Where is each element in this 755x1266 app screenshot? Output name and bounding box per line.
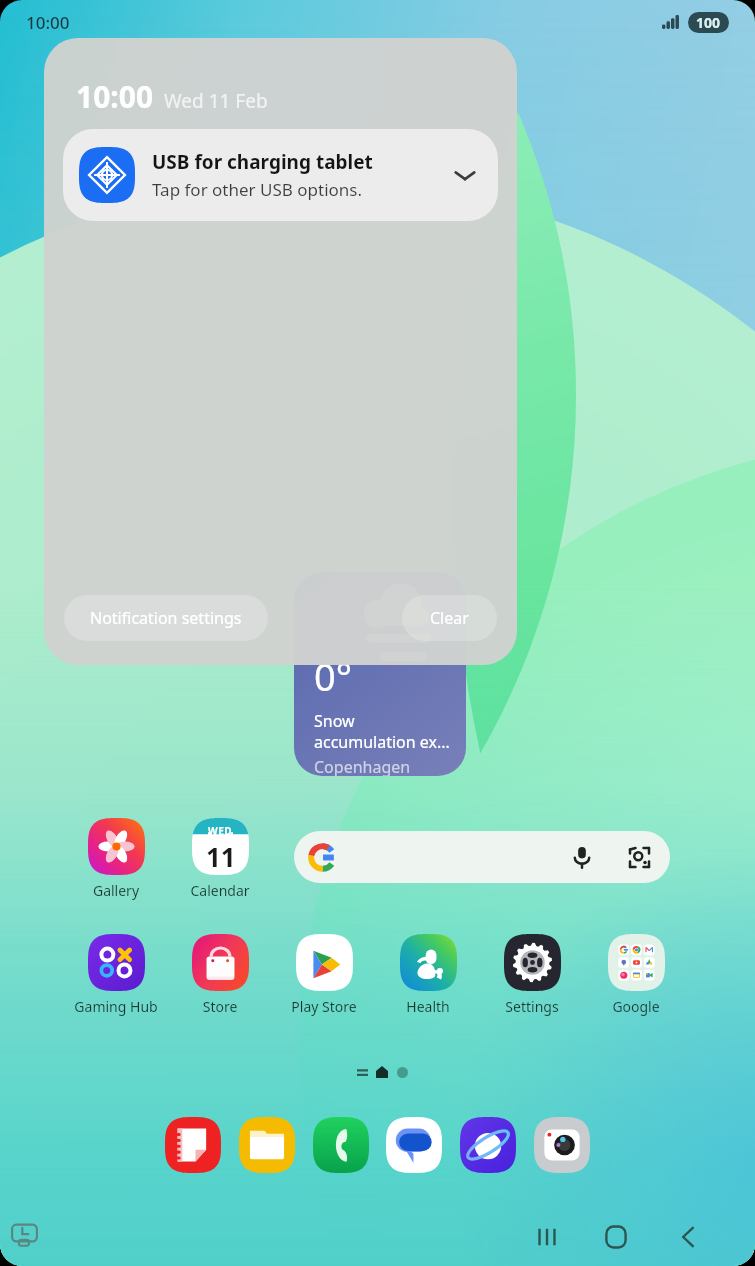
staticText: Calendar	[171, 881, 269, 900]
staticText: Settings	[483, 997, 581, 1016]
button[interactable]: Home page	[372, 1062, 392, 1082]
staticText: 10:00	[76, 76, 154, 117]
button[interactable]	[534, 1117, 590, 1173]
button[interactable]: Store	[171, 934, 269, 1016]
staticText: Snow accumulation ex...	[314, 710, 450, 753]
button[interactable]	[239, 1117, 295, 1173]
staticText: Gaming Hub	[67, 997, 165, 1016]
button[interactable]: Gallery	[67, 818, 165, 900]
staticText: 10:00	[26, 11, 70, 34]
button[interactable]: Gaming Hub	[67, 934, 165, 1016]
staticText: 0°	[314, 650, 353, 702]
staticText: 100	[696, 13, 721, 32]
button[interactable]: Notification settings	[64, 595, 268, 641]
button[interactable]: Widgets page	[352, 1062, 372, 1082]
other: Voice search	[570, 845, 594, 869]
staticText: Wed 11 Feb	[164, 88, 268, 114]
staticText: Gallery	[67, 881, 165, 900]
staticText: Store	[171, 997, 269, 1016]
button[interactable]: Settings	[483, 934, 581, 1016]
staticText: Copenhagen	[314, 756, 411, 776]
staticText: Clear	[430, 607, 469, 629]
button[interactable]: Google	[587, 934, 685, 1016]
button[interactable]: Home	[590, 1211, 642, 1263]
other: Expand	[452, 162, 478, 188]
button[interactable]: Back	[662, 1211, 714, 1263]
button[interactable]: Clear	[402, 595, 497, 641]
staticText: Notification settings	[90, 607, 242, 629]
staticText: Tap for other USB options.	[152, 178, 363, 201]
button[interactable]: 0°	[294, 572, 466, 776]
button[interactable]: Health	[379, 934, 477, 1016]
button[interactable]	[165, 1117, 221, 1173]
staticText: 11	[206, 839, 236, 874]
other: Google Lens	[627, 845, 652, 870]
button[interactable]	[313, 1117, 369, 1173]
button[interactable]: Recents	[521, 1211, 573, 1263]
staticText: USB for charging tablet	[152, 149, 373, 175]
button[interactable]: Voice search	[294, 831, 670, 883]
button[interactable]	[386, 1117, 442, 1173]
button[interactable]: WED	[171, 818, 269, 900]
staticText: Health	[379, 997, 477, 1016]
staticText: Play Store	[275, 997, 373, 1016]
button[interactable]: USB for charging tablet	[63, 129, 498, 221]
staticText: WED	[208, 824, 233, 838]
button[interactable]: Next page	[392, 1062, 412, 1082]
button[interactable]: Play Store	[275, 934, 373, 1016]
staticText: Google	[587, 997, 685, 1016]
button[interactable]: Screen timeout	[0, 1211, 48, 1259]
button[interactable]	[460, 1117, 516, 1173]
